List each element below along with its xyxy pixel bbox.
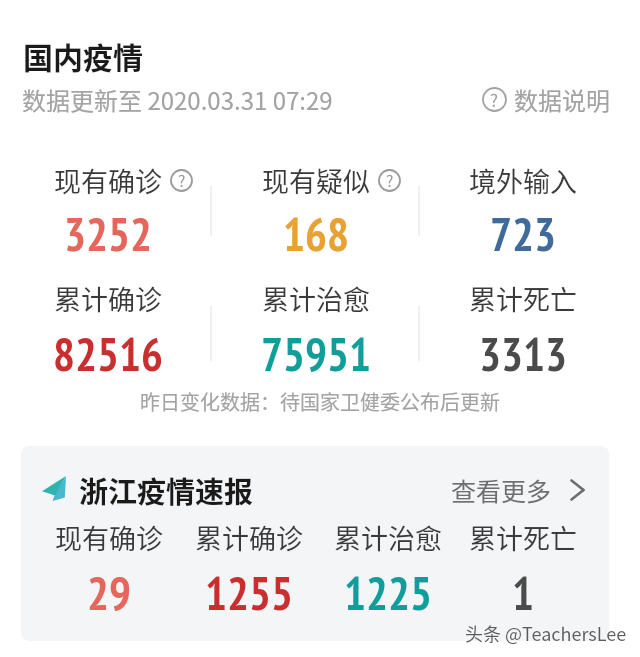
staticText: 国内疫情 bbox=[23, 34, 143, 77]
staticText: 现有确诊 bbox=[55, 518, 163, 557]
button[interactable]: 现有疑似 bbox=[176, 161, 456, 200]
staticText: 3252 bbox=[64, 204, 152, 264]
staticText: 29 bbox=[87, 563, 131, 623]
staticText: ? bbox=[178, 169, 186, 192]
staticText: 3313 bbox=[479, 324, 567, 384]
staticText: 168 bbox=[283, 204, 349, 264]
staticText: 1225 bbox=[344, 563, 432, 623]
staticText: ? bbox=[386, 169, 394, 192]
staticText: ? bbox=[490, 87, 499, 112]
staticText: 昨日变化数据：待国家卫健委公布后更新 bbox=[0, 387, 640, 416]
staticText: 累计治愈 bbox=[334, 518, 442, 557]
staticText: 75951 bbox=[261, 324, 371, 384]
staticText: 现有确诊 bbox=[54, 161, 162, 200]
staticText: 查看更多 bbox=[451, 472, 552, 508]
button[interactable]: 现有确诊 bbox=[0, 518, 249, 557]
staticText: 累计确诊 bbox=[195, 518, 303, 557]
staticText: 现有疑似 bbox=[262, 161, 370, 200]
button[interactable]: 境外输入 bbox=[383, 161, 640, 200]
button[interactable]: 现有确诊 bbox=[0, 161, 248, 200]
staticText: 累计死亡 bbox=[469, 279, 577, 318]
button[interactable]: 累计治愈 bbox=[248, 518, 528, 557]
button[interactable]: 累计确诊 bbox=[109, 518, 389, 557]
staticText: 1 bbox=[512, 563, 534, 623]
staticText: 82516 bbox=[53, 324, 163, 384]
staticText: 境外输入 bbox=[469, 161, 577, 200]
staticText: 浙江疫情速报 bbox=[79, 469, 254, 511]
button[interactable]: ? bbox=[482, 82, 610, 117]
other: Send bbox=[42, 476, 66, 501]
button[interactable]: 累计确诊 bbox=[0, 279, 248, 318]
staticText: 723 bbox=[490, 204, 556, 264]
button[interactable]: 累计死亡 bbox=[383, 279, 640, 318]
staticText: 累计死亡 bbox=[469, 518, 577, 557]
button[interactable]: 累计治愈 bbox=[176, 279, 456, 318]
staticText: 累计确诊 bbox=[54, 279, 162, 318]
button[interactable]: 累计死亡 bbox=[383, 518, 640, 557]
button[interactable]: Help bbox=[170, 169, 193, 192]
button[interactable]: 查看更多 bbox=[451, 472, 585, 508]
staticText: 1255 bbox=[205, 563, 293, 623]
staticText: 数据说明 bbox=[514, 82, 610, 117]
staticText: 头条 @TeachersLee bbox=[465, 620, 627, 646]
button[interactable]: Help bbox=[378, 169, 401, 192]
staticText: 累计治愈 bbox=[262, 279, 370, 318]
button[interactable]: Send bbox=[21, 446, 609, 641]
staticText: 数据更新至 2020.03.31 07:29 bbox=[22, 82, 333, 117]
